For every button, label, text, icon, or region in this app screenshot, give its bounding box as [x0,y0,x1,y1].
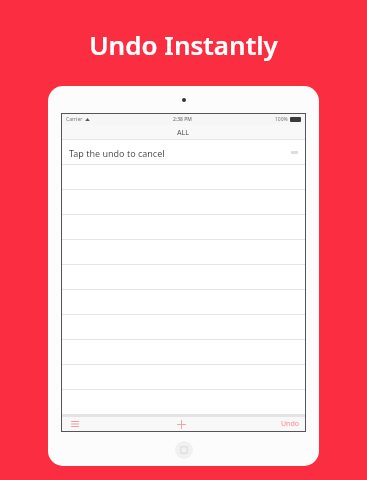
button[interactable]: Menu [68,417,82,430]
button[interactable]: Add [174,417,188,431]
button[interactable] [62,365,305,390]
button[interactable] [62,240,305,265]
button[interactable]: Tap the undo to cancel [62,140,305,165]
staticText: 100% [275,116,288,123]
staticText: Carrier [66,116,83,123]
button[interactable]: Home [175,441,193,459]
button[interactable] [62,215,305,240]
button[interactable] [62,165,305,190]
button[interactable] [62,315,305,340]
staticText: Undo [281,419,299,429]
staticText: ALL [177,128,190,138]
button[interactable] [62,390,305,415]
staticText: Undo Instantly [0,27,367,62]
staticText: Tap the undo to cancel [69,147,165,159]
button[interactable]: Undo [281,419,299,429]
button[interactable] [62,340,305,365]
staticText: 2:38 PM [173,116,192,123]
button[interactable] [62,190,305,215]
button[interactable] [62,265,305,290]
button[interactable] [62,290,305,315]
